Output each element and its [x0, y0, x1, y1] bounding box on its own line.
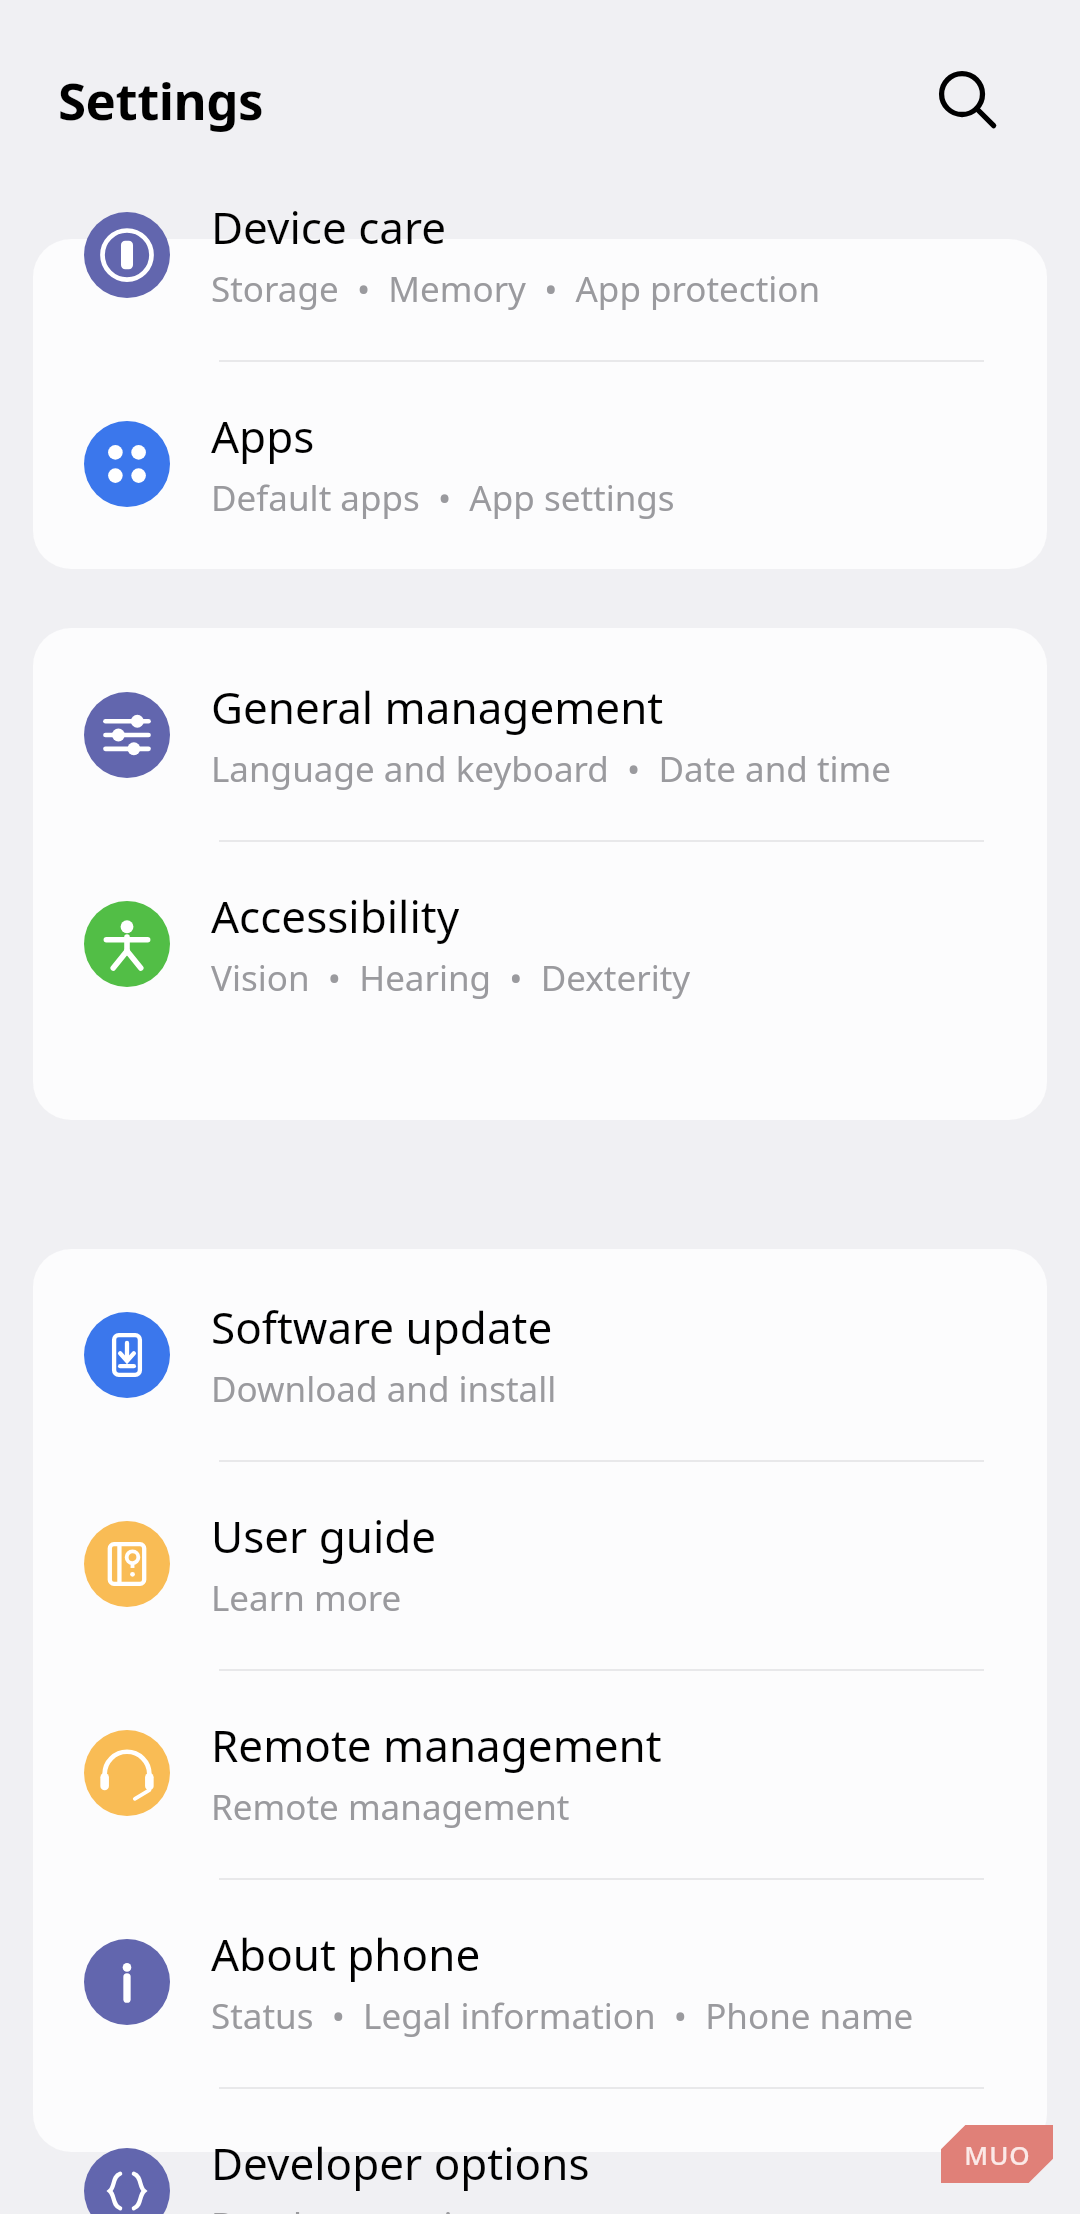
staticText: Learn more [211, 1574, 402, 1622]
button[interactable]: Accessibility [33, 840, 1047, 1048]
staticText: User guide [211, 1506, 437, 1566]
button[interactable]: Software update [33, 1251, 1047, 1459]
button[interactable]: Device care [33, 151, 1047, 359]
button[interactable]: Remote management [33, 1669, 1047, 1877]
button[interactable]: Apps [33, 360, 1047, 568]
button[interactable]: About phone [33, 1878, 1047, 2086]
staticText: MUO [964, 2137, 1031, 2172]
button[interactable]: User guide [33, 1460, 1047, 1668]
staticText: Software update [211, 1297, 553, 1357]
button[interactable]: Search [923, 55, 1011, 143]
staticText: Developer options [211, 2201, 513, 2214]
staticText: Remote management [211, 1783, 570, 1831]
staticText: Remote management [211, 1715, 662, 1775]
staticText: Language and keyboard • Date and time [211, 745, 892, 793]
staticText: Accessibility [211, 886, 460, 946]
button[interactable]: Developer options [33, 2087, 1047, 2214]
staticText: Vision • Hearing • Dexterity [211, 954, 691, 1002]
button[interactable]: General management [33, 631, 1047, 839]
staticText: Storage • Memory • App protection [211, 265, 821, 313]
staticText: About phone [211, 1924, 481, 1984]
staticText: General management [211, 677, 664, 737]
staticText: Device care [211, 197, 447, 257]
staticText: Default apps • App settings [211, 474, 675, 522]
staticText: Download and install [211, 1365, 557, 1413]
staticText: Developer options [211, 2133, 590, 2193]
staticText: Settings [58, 65, 264, 134]
staticText: Status • Legal information • Phone name [211, 1992, 914, 2040]
staticText: Apps [211, 406, 315, 466]
